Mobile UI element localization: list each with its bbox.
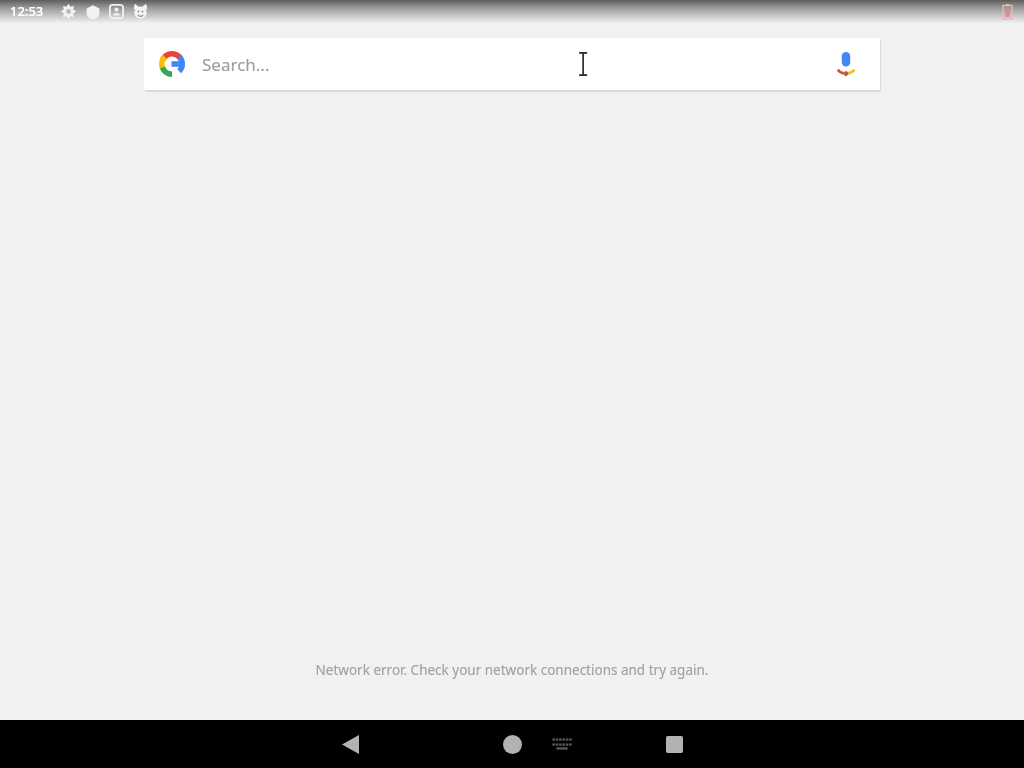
button[interactable]: Voice search (828, 46, 864, 82)
button[interactable]: Back (314, 720, 386, 768)
staticText: Network error. Check your network connec… (0, 661, 1024, 679)
button[interactable]: Recent apps (638, 720, 710, 768)
button[interactable]: Home (476, 720, 548, 768)
staticText: 12:53 (10, 2, 44, 20)
button[interactable]: Search... (144, 38, 880, 90)
button[interactable]: Switch keyboard (538, 720, 586, 768)
staticText: Search... (202, 53, 270, 76)
